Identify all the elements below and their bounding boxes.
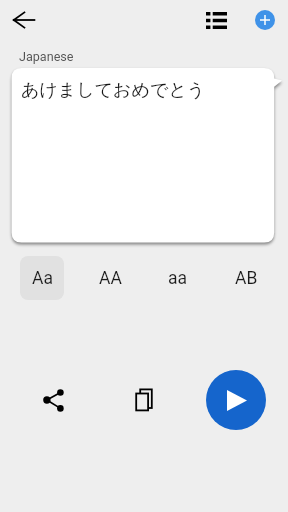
staticText: Japanese [19, 49, 74, 64]
button[interactable]: AA [88, 256, 132, 300]
button[interactable]: Play [206, 370, 266, 430]
button[interactable]: Add [255, 10, 275, 30]
button[interactable]: History list [198, 2, 234, 38]
staticText: あけましておめでとう [21, 79, 206, 102]
staticText: Aa [32, 268, 53, 289]
staticText: aa [168, 268, 188, 289]
button[interactable]: Share [36, 382, 72, 418]
staticText: AA [99, 268, 122, 289]
button[interactable]: AB [224, 256, 268, 300]
button[interactable]: Aa [20, 256, 64, 300]
staticText: AB [235, 268, 258, 289]
button[interactable]: aa [156, 256, 200, 300]
button[interactable]: Copy [126, 382, 162, 418]
button[interactable]: Back [4, 2, 42, 40]
